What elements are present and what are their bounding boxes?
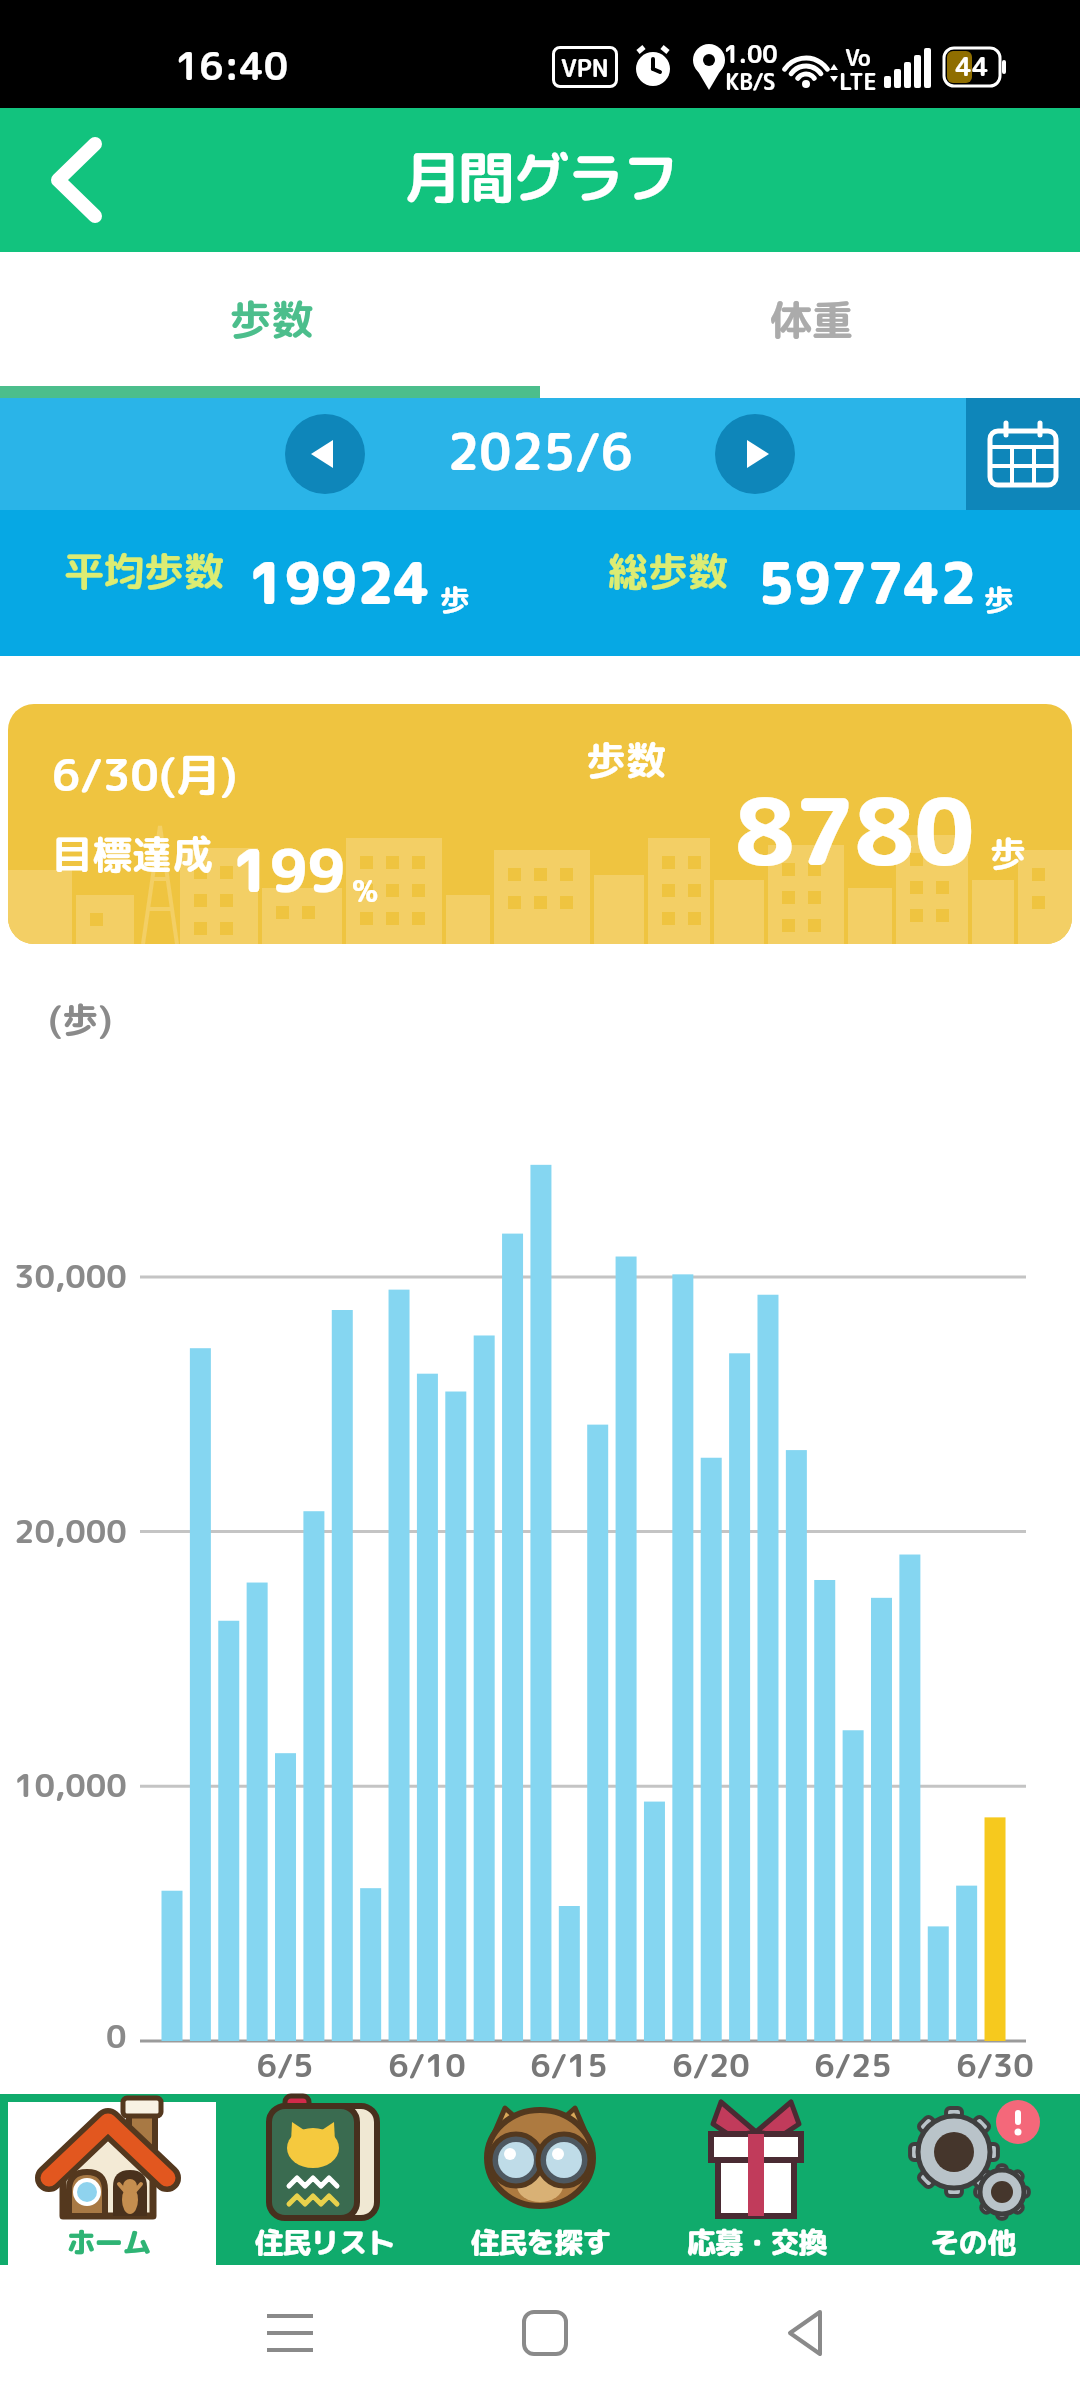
staticText: 0 <box>106 2014 127 2059</box>
staticText: 597742 <box>758 544 977 622</box>
staticText: LTE <box>839 66 877 97</box>
button[interactable] <box>285 414 365 494</box>
staticText: 6/30(月) <box>52 744 238 805</box>
staticText: 30,000 <box>14 1254 127 1299</box>
staticText: 6/10 <box>388 2043 466 2088</box>
button[interactable] <box>864 2094 1080 2265</box>
button[interactable] <box>760 2288 850 2378</box>
staticText: 44 <box>955 48 989 84</box>
staticText: 199 <box>232 830 346 911</box>
staticText: 6/30 <box>956 2043 1034 2088</box>
button[interactable] <box>715 414 795 494</box>
staticText: 体重 <box>769 290 854 349</box>
button[interactable] <box>966 398 1080 510</box>
staticText: 1.00 <box>723 37 778 70</box>
button[interactable] <box>540 252 1080 398</box>
button[interactable] <box>648 2094 864 2265</box>
staticText: 月間グラフ <box>404 138 677 216</box>
staticText: 16:40 <box>175 39 289 92</box>
staticText: % <box>352 870 379 912</box>
staticText: 総歩数 <box>608 543 728 599</box>
staticText: (歩) <box>48 994 113 1044</box>
staticText: 目標達成 <box>52 826 212 882</box>
staticText: 20,000 <box>14 1509 127 1554</box>
staticText: 住民を探す <box>470 2222 611 2262</box>
staticText: 19924 <box>248 544 430 622</box>
staticText: 歩数 <box>229 290 314 349</box>
staticText: 10,000 <box>14 1763 127 1808</box>
button[interactable] <box>0 252 540 398</box>
staticText: 歩 <box>984 579 1014 621</box>
staticText: 歩数 <box>586 732 666 788</box>
button[interactable] <box>432 2094 648 2265</box>
staticText: 歩 <box>990 828 1027 878</box>
staticText: 歩 <box>440 579 470 621</box>
button[interactable] <box>216 2094 432 2265</box>
staticText: ホーム <box>66 2222 151 2262</box>
button[interactable] <box>30 130 130 230</box>
button[interactable] <box>500 2288 590 2378</box>
staticText: 6/5 <box>256 2043 314 2088</box>
staticText: 6/20 <box>672 2043 750 2088</box>
staticText: Vo <box>845 42 871 73</box>
staticText: 6/25 <box>814 2043 892 2088</box>
staticText: 平均歩数 <box>64 543 224 599</box>
staticText: 応募・交換 <box>686 2222 827 2262</box>
button[interactable]: 6/30(月) <box>8 704 1072 944</box>
staticText: 6/15 <box>530 2043 608 2088</box>
staticText: 住民リスト <box>254 2222 395 2262</box>
button[interactable] <box>245 2288 335 2378</box>
button[interactable] <box>0 2094 216 2265</box>
staticText: 8780 <box>735 766 975 894</box>
staticText: VPN <box>561 51 609 84</box>
staticText: 2025/6 <box>447 416 633 486</box>
staticText: その他 <box>930 2222 1015 2262</box>
staticText: KB/S <box>725 66 776 97</box>
